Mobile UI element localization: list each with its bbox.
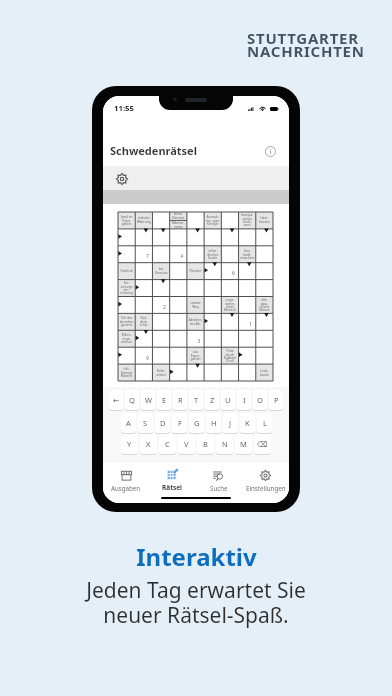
button[interactable]: J [223, 413, 238, 434]
button[interactable]: Ausgaben [103, 465, 149, 496]
button[interactable]: P [269, 390, 283, 411]
button[interactable]: G [189, 413, 204, 434]
button[interactable]: Q [125, 390, 139, 411]
button[interactable]: S [138, 413, 153, 434]
staticText: D [160, 418, 166, 428]
button[interactable]: K [240, 413, 255, 434]
staticText: 11:55 [114, 103, 135, 114]
staticText: Schwedenrätsel [110, 143, 197, 158]
staticText: C [165, 439, 170, 449]
button[interactable]: Suche [195, 465, 242, 496]
staticText: Q [129, 395, 135, 405]
staticText: I [243, 395, 246, 405]
button[interactable]: Rätsel [149, 465, 195, 496]
staticText: T [194, 395, 199, 405]
staticText: ⌫ [257, 440, 268, 449]
button[interactable]: D [155, 413, 170, 434]
staticText: L [263, 418, 267, 428]
button[interactable]: W [141, 390, 155, 411]
staticText: B [203, 439, 208, 449]
staticText: W [145, 395, 152, 405]
staticText: A [126, 418, 131, 428]
button[interactable]: O [253, 390, 267, 411]
button[interactable]: X [140, 434, 157, 455]
button[interactable]: F [172, 413, 187, 434]
button[interactable]: Y [121, 434, 138, 455]
staticText: P [274, 395, 279, 405]
button[interactable]: M [235, 434, 252, 455]
staticText: E [162, 395, 167, 405]
button[interactable]: Settings [116, 173, 128, 185]
staticText: Einstellungen [246, 484, 286, 492]
button[interactable]: L [257, 413, 272, 434]
staticText: Y [127, 439, 132, 449]
staticText: H [211, 418, 217, 428]
staticText: U [225, 395, 231, 405]
button[interactable]: N [216, 434, 233, 455]
staticText: O [257, 395, 263, 405]
staticText: S [143, 418, 148, 428]
staticText: J [229, 418, 232, 428]
button[interactable]: U [221, 390, 235, 411]
button[interactable]: V [178, 434, 195, 455]
button[interactable]: ← [109, 390, 123, 411]
staticText: V [184, 439, 189, 449]
staticText: ← [113, 396, 120, 405]
staticText: Suche [210, 484, 228, 492]
staticText: Ausgaben [111, 484, 141, 492]
button[interactable]: Einstellungen [242, 465, 289, 496]
button[interactable]: R [173, 390, 187, 411]
button[interactable]: C [159, 434, 176, 455]
staticText: F [178, 418, 182, 428]
button[interactable]: ⌫ [254, 434, 271, 455]
button[interactable]: T [189, 390, 203, 411]
staticText: K [245, 418, 250, 428]
staticText: Interaktiv [136, 540, 257, 573]
staticText: M [240, 439, 247, 449]
staticText: Jeden Tag erwartet Sie neuer Rätsel-Spaß… [86, 576, 306, 629]
staticText: X [146, 439, 151, 449]
staticText: G [194, 418, 200, 428]
button[interactable]: Information [265, 146, 276, 157]
button[interactable]: E [157, 390, 171, 411]
staticText: R [178, 395, 183, 405]
button[interactable]: H [206, 413, 221, 434]
button[interactable]: B [197, 434, 214, 455]
button[interactable]: A [121, 413, 136, 434]
staticText: Rätsel [162, 483, 183, 492]
staticText: N [222, 439, 228, 449]
staticText: Z [210, 395, 215, 405]
button[interactable]: Z [205, 390, 219, 411]
staticText: STUTTGARTER NACHRICHTEN [247, 28, 365, 62]
button[interactable]: I [237, 390, 251, 411]
